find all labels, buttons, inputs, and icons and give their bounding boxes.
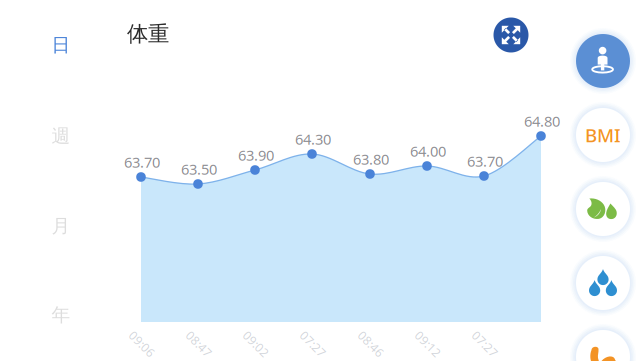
button[interactable]: 年 bbox=[36, 290, 86, 340]
staticText: 09:02 bbox=[240, 336, 271, 352]
staticText: 08:47 bbox=[183, 336, 214, 352]
button[interactable]: 月 bbox=[36, 201, 86, 251]
staticText: 月 bbox=[51, 214, 70, 237]
staticText: 63.70 bbox=[467, 151, 503, 171]
staticText: 07:27 bbox=[297, 336, 328, 352]
button[interactable]: Body fat bbox=[570, 176, 636, 242]
staticText: 体重 bbox=[127, 21, 169, 47]
staticText: 年 bbox=[51, 303, 70, 326]
button[interactable]: 日 bbox=[36, 20, 86, 70]
staticText: 08:46 bbox=[355, 336, 386, 352]
button[interactable]: Muscle mass bbox=[570, 324, 636, 361]
staticText: BMI bbox=[585, 123, 621, 147]
button[interactable]: Weight bbox=[570, 28, 636, 94]
staticText: 63.50 bbox=[181, 159, 217, 179]
staticText: 63.80 bbox=[353, 149, 389, 169]
staticText: 週 bbox=[51, 124, 70, 147]
button[interactable]: Body water bbox=[570, 250, 636, 316]
staticText: 63.70 bbox=[124, 152, 160, 172]
button[interactable]: Expand chart bbox=[493, 17, 528, 52]
staticText: 64.80 bbox=[524, 111, 560, 131]
staticText: 64.30 bbox=[295, 129, 331, 149]
button[interactable]: BMI bbox=[570, 102, 636, 168]
staticText: 09:06 bbox=[126, 336, 157, 352]
staticText: 63.90 bbox=[238, 145, 274, 165]
staticText: 07:27 bbox=[469, 336, 500, 352]
button[interactable]: 週 bbox=[36, 111, 86, 161]
staticText: 64.00 bbox=[410, 141, 446, 161]
staticText: 09:12 bbox=[412, 336, 443, 352]
staticText: 日 bbox=[51, 33, 70, 56]
